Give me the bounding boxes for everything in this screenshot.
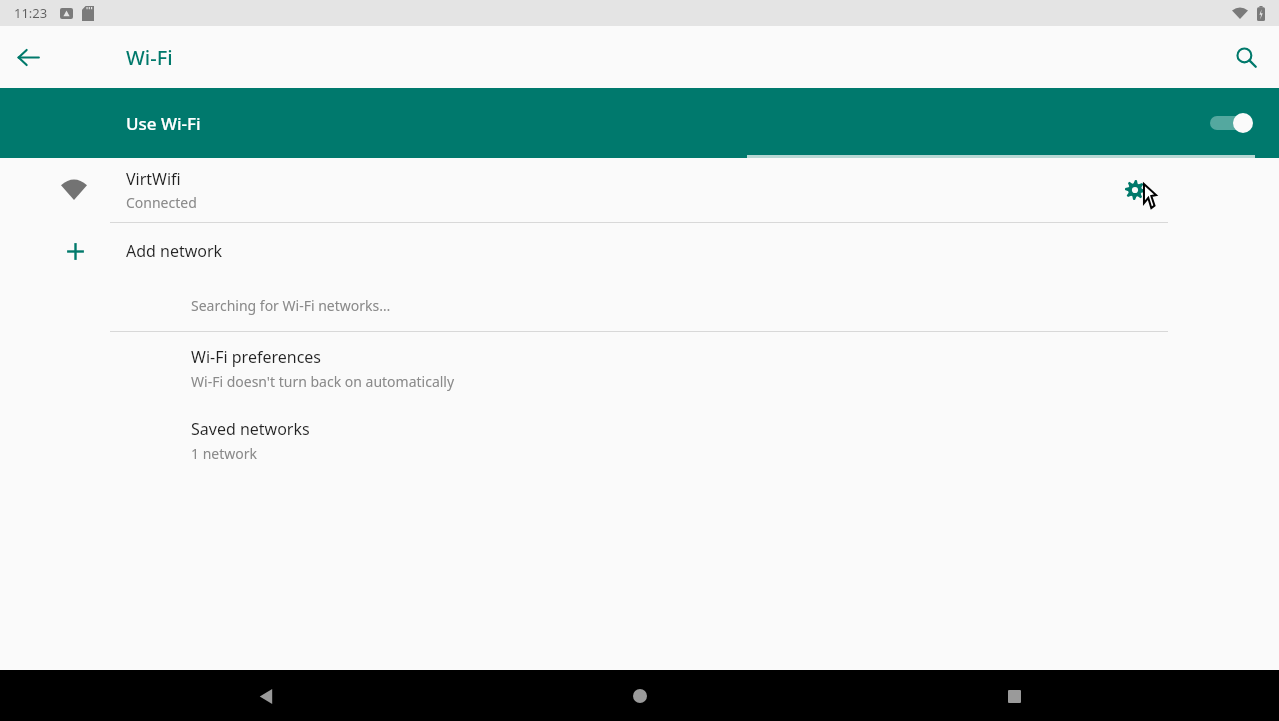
button[interactable]: Saved networks [0, 404, 1279, 476]
staticText: VirtWifi [126, 168, 181, 190]
button[interactable]: Recent apps [990, 672, 1038, 720]
button[interactable]: Back [242, 672, 290, 720]
staticText: Searching for Wi-Fi networks… [191, 296, 391, 315]
staticText: Connected [126, 193, 197, 212]
staticText: Wi-Fi [126, 44, 173, 71]
staticText: Wi-Fi preferences [191, 346, 322, 368]
button[interactable]: Add network [0, 223, 1279, 279]
staticText: 11:23 [14, 4, 48, 22]
button[interactable]: Home [616, 672, 664, 720]
button[interactable]: Wi-Fi preferences [0, 332, 1279, 404]
button[interactable]: Search [1225, 36, 1267, 78]
button[interactable]: VirtWifi [0, 158, 1279, 222]
staticText: Saved networks [191, 418, 310, 440]
staticText: Wi-Fi doesn't turn back on automatically [191, 372, 455, 391]
staticText: 1 network [191, 444, 257, 463]
button[interactable]: Network settings [1115, 170, 1155, 210]
button[interactable]: Navigate up [8, 37, 48, 77]
staticText: Use Wi-Fi [126, 112, 201, 135]
staticText: Add network [126, 240, 223, 262]
button[interactable]: Use Wi-Fi [0, 88, 1279, 158]
